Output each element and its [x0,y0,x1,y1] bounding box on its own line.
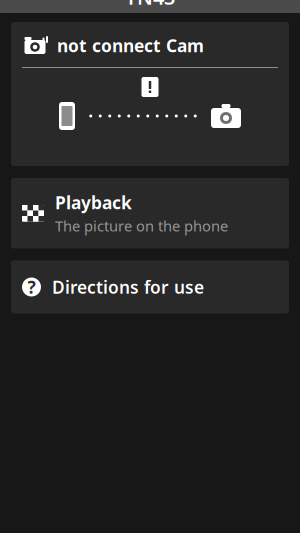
button[interactable]: Playback [11,178,289,248]
staticText: not connect Cam [57,34,204,57]
staticText: YN43 [125,0,175,10]
staticText: The picture on the phone [55,216,228,235]
staticText: ? [27,275,35,298]
staticText: Playback [55,191,132,214]
staticText: Directions for use [52,275,204,298]
button[interactable]: ? [11,260,289,313]
button[interactable]: not connect Cam [11,22,289,166]
